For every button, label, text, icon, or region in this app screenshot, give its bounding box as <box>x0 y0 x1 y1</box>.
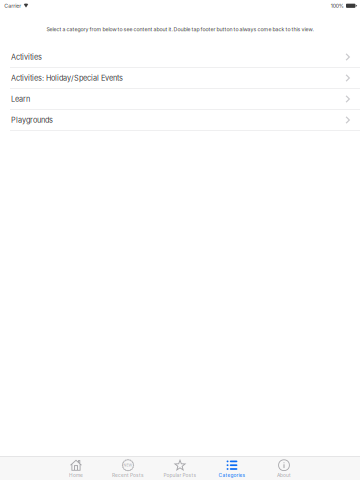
button[interactable]: NEW <box>102 458 154 480</box>
button[interactable]: Activities: Holiday/Special Events <box>0 68 360 89</box>
button[interactable]: About <box>258 458 310 480</box>
button[interactable]: Popular Posts <box>154 458 206 480</box>
staticText: Playgrounds <box>11 116 53 124</box>
button[interactable]: Learn <box>0 89 360 110</box>
staticText: Home <box>69 472 83 478</box>
staticText: Select a category from below to see cont… <box>46 26 313 32</box>
staticText: Popular Posts <box>163 472 196 478</box>
staticText: Activities: Holiday/Special Events <box>11 74 123 82</box>
staticText: Categories <box>218 472 245 478</box>
staticText: NEW <box>123 463 132 467</box>
button[interactable]: Playgrounds <box>0 110 360 131</box>
button[interactable]: Activities <box>0 47 360 68</box>
staticText: Carrier <box>4 3 21 9</box>
staticText: Recent Posts <box>112 472 144 478</box>
button[interactable]: Home <box>50 458 102 480</box>
staticText: Activities <box>11 53 42 61</box>
staticText: Learn <box>11 95 30 103</box>
staticText: About <box>277 472 291 478</box>
button[interactable]: Categories <box>206 458 258 480</box>
staticText: 100% <box>331 3 344 9</box>
